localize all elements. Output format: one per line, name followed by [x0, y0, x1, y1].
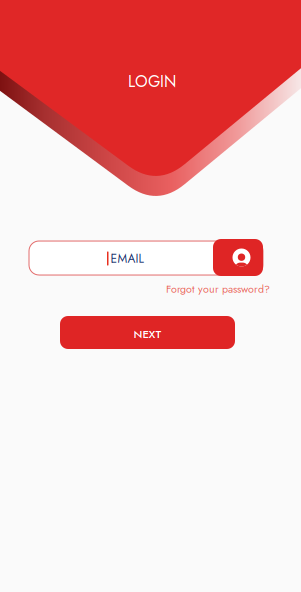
button[interactable]: Forgot your password? [166, 283, 270, 295]
button[interactable]: NEXT [60, 316, 235, 349]
staticText: EMAIL [110, 250, 143, 267]
staticText: Forgot your password? [166, 281, 270, 297]
staticText: LOGIN [128, 70, 176, 93]
staticText: NEXT [133, 326, 161, 342]
button[interactable]: Account [213, 239, 263, 276]
